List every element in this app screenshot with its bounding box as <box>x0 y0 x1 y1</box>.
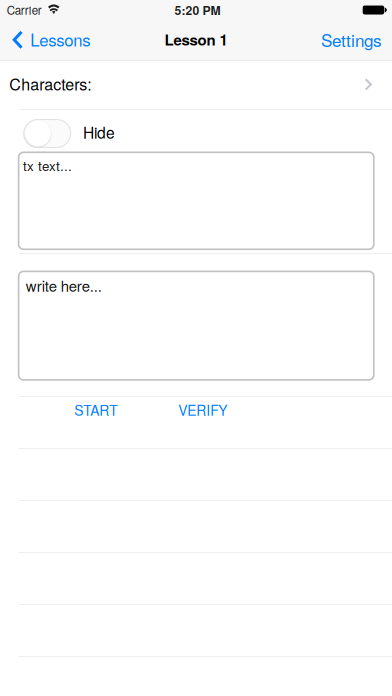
staticText: Settings <box>321 27 382 52</box>
staticText: Carrier <box>7 1 42 18</box>
button[interactable]: VERIFY <box>178 395 227 425</box>
staticText: Lessons <box>30 27 90 51</box>
staticText: write here... <box>26 275 102 296</box>
button[interactable]: Lessons <box>0 20 98 60</box>
staticText: START <box>74 400 117 420</box>
staticText: Hide <box>83 121 115 143</box>
staticText: 5:20 PM <box>174 1 220 19</box>
button[interactable]: Hide <box>24 119 71 147</box>
button[interactable]: START <box>74 395 117 425</box>
button[interactable]: Settings <box>311 20 392 60</box>
staticText: Lesson 1 <box>164 29 227 50</box>
staticText: tx text... <box>23 156 72 175</box>
staticText: Characters: <box>9 72 91 95</box>
staticText: VERIFY <box>178 400 227 420</box>
button[interactable]: Characters: <box>0 61 392 109</box>
